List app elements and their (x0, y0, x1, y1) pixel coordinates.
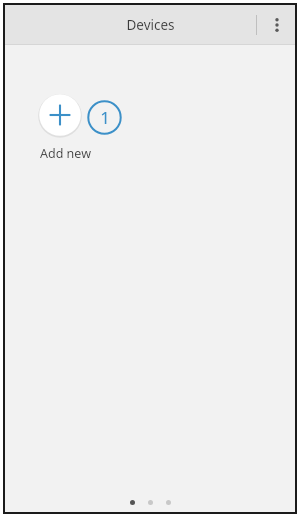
button[interactable]: Add new device (38, 93, 82, 137)
button[interactable]: More options (259, 5, 295, 44)
staticText: Devices (126, 16, 175, 34)
button[interactable]: 1 device (87, 100, 122, 135)
staticText: 1 (100, 106, 110, 129)
button[interactable]: Add new (40, 145, 91, 162)
